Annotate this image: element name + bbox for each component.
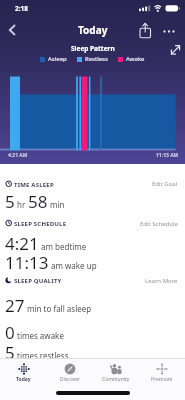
staticText: Asleep — [48, 55, 67, 63]
staticText: 4:21 — [5, 232, 39, 255]
staticText: SLEEP SCHEDULE — [14, 220, 67, 228]
staticText: SLEEP QUALITY — [14, 277, 62, 285]
staticText: 4:21 AM — [8, 152, 28, 159]
button[interactable]: Premium — [139, 358, 185, 400]
staticText: times restless — [17, 350, 69, 361]
staticText: 5 — [5, 341, 15, 364]
staticText: 5 — [5, 190, 15, 213]
button[interactable]: Edit Schedule — [140, 220, 178, 228]
staticText: 58 — [28, 190, 48, 213]
staticText: min — [50, 199, 65, 210]
staticText: 0 — [5, 321, 15, 344]
button[interactable]: Learn More — [145, 277, 178, 285]
staticText: Restless — [85, 55, 108, 63]
button[interactable] — [136, 21, 154, 39]
staticText: 11:13 — [5, 251, 49, 274]
button[interactable] — [158, 21, 178, 41]
staticText: hr — [17, 199, 26, 210]
staticText: 11:13 AM — [156, 152, 179, 159]
staticText: am wake up — [51, 260, 97, 271]
staticText: Awake — [126, 55, 145, 63]
staticText: am bedtime — [41, 241, 87, 252]
button[interactable]: Discover — [47, 358, 93, 400]
staticText: 2:18 — [15, 4, 28, 13]
staticText: Discover — [60, 376, 81, 383]
staticText: TIME ASLEEP — [14, 181, 54, 189]
staticText: times awake — [17, 330, 64, 341]
staticText: Premium — [151, 376, 173, 383]
staticText: Community — [102, 376, 130, 383]
staticText: Sleep Pattern — [71, 44, 115, 53]
staticText: min to fall asleep — [27, 303, 92, 314]
button[interactable]: Community — [93, 358, 139, 400]
staticText: Today — [16, 376, 31, 383]
button[interactable] — [4, 20, 22, 38]
button[interactable]: Today — [0, 358, 47, 400]
staticText: Today — [78, 23, 108, 37]
staticText: 27 — [5, 294, 25, 317]
button[interactable]: Edit Goal — [152, 180, 178, 188]
